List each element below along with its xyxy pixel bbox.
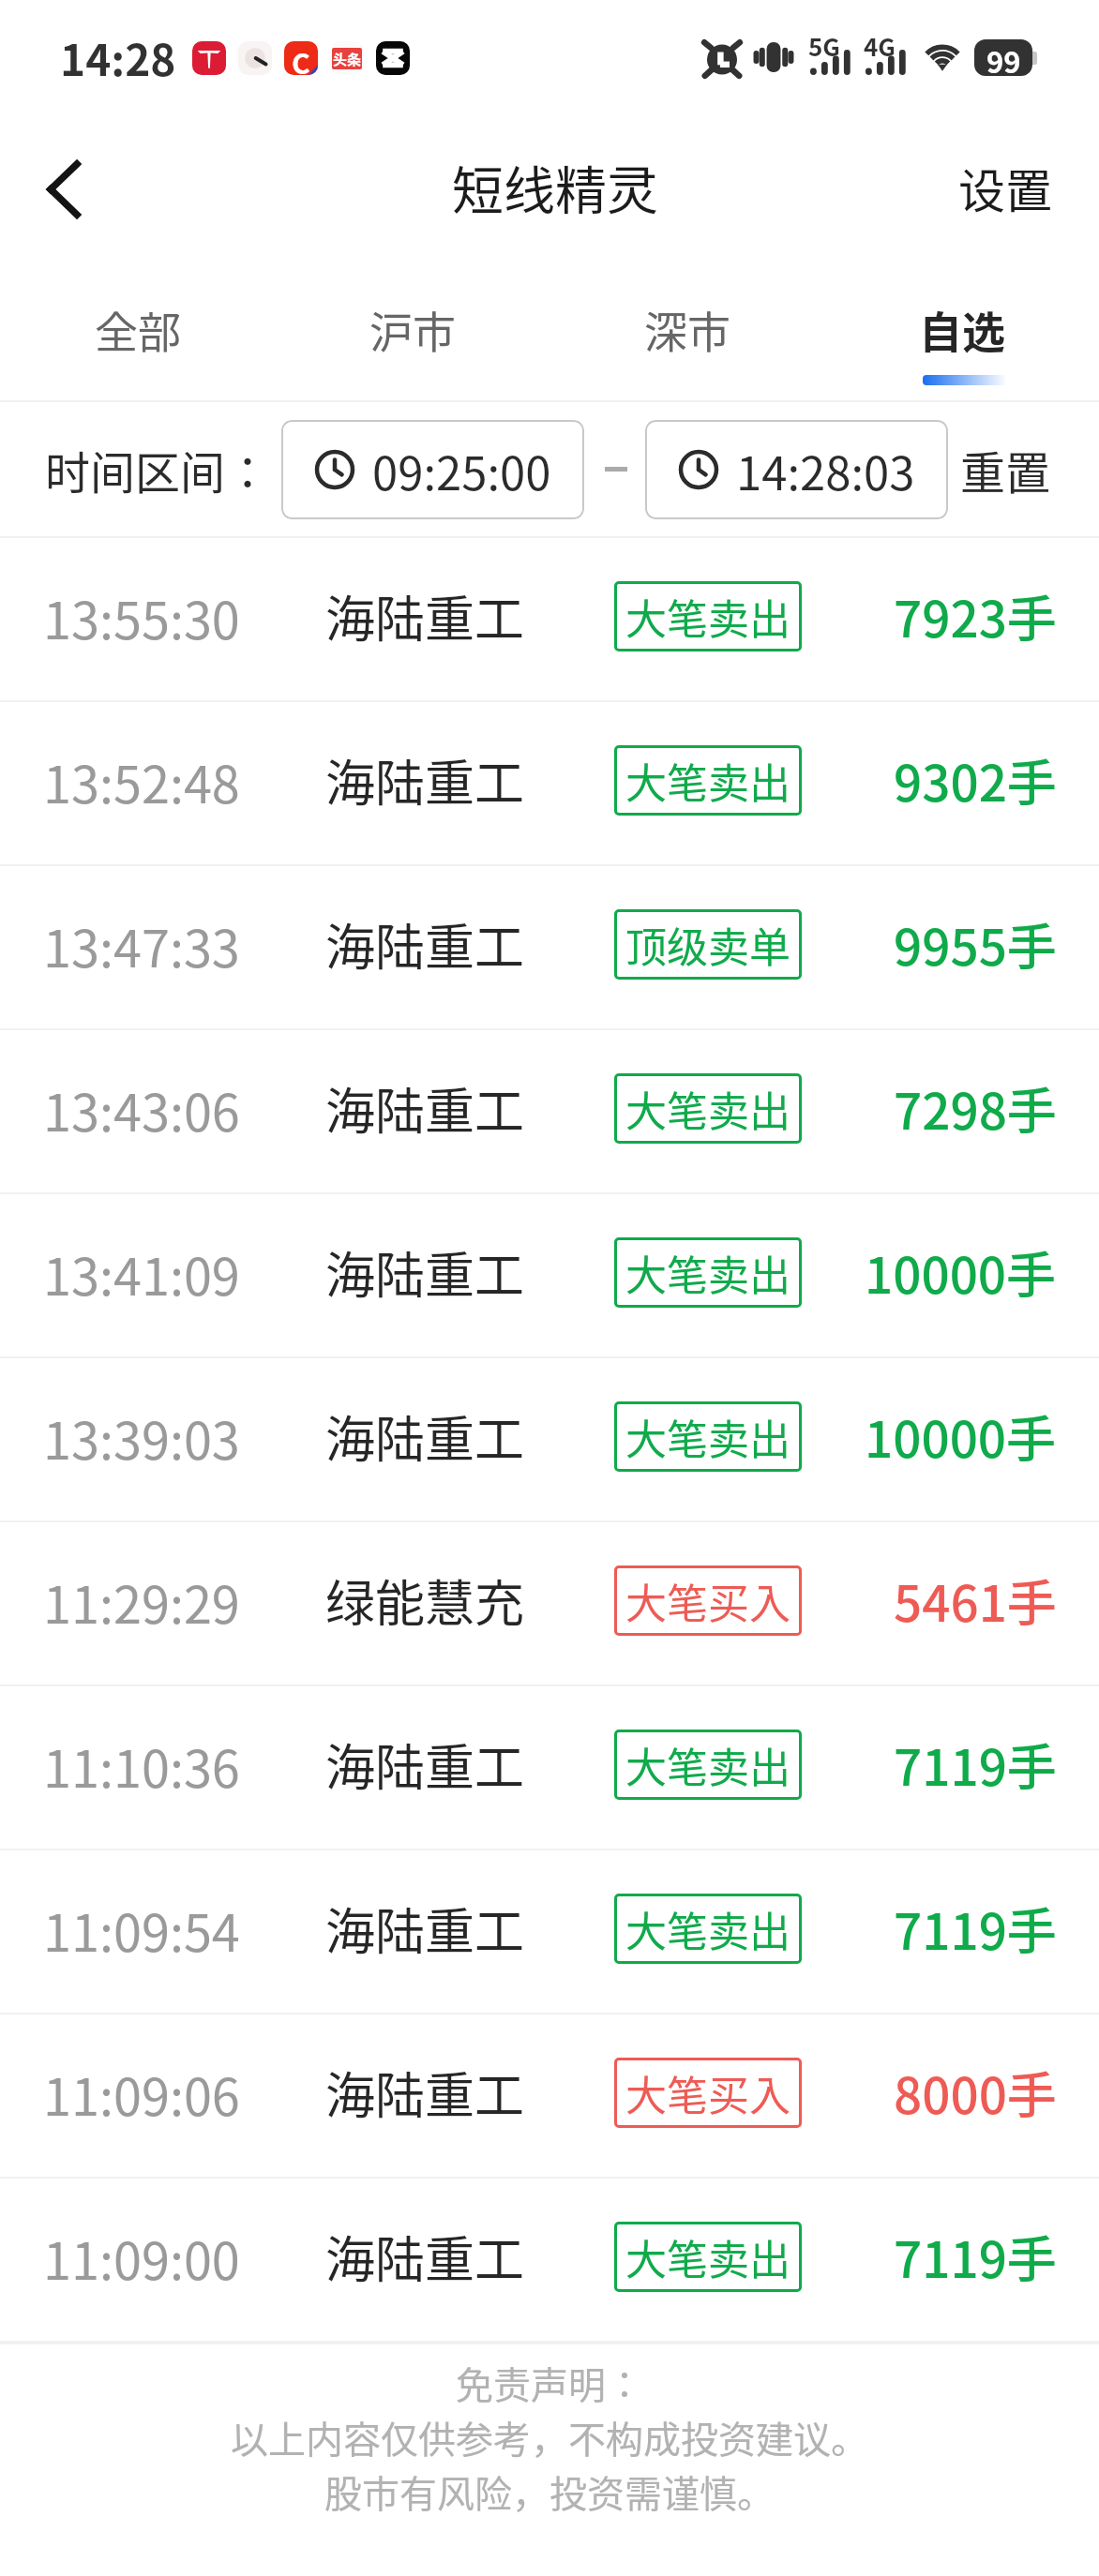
staticText: 大笔卖出	[625, 1899, 790, 1959]
staticText: 11:09:54	[43, 1893, 240, 1966]
button[interactable]: 全部	[0, 264, 275, 400]
staticText: 9955手	[894, 908, 1057, 981]
button[interactable]: 11:09:06	[0, 2014, 1099, 2177]
button[interactable]: 11:09:54	[0, 1850, 1099, 2013]
staticText: 海陆重工	[325, 580, 524, 652]
button[interactable]: 14:28:03	[645, 420, 948, 519]
staticText: 短线精灵	[452, 149, 659, 224]
staticText: 大笔卖出	[625, 1079, 790, 1139]
staticText: 11:09:00	[43, 2221, 240, 2294]
staticText: 重置	[960, 437, 1051, 502]
staticText: 深市	[644, 298, 730, 361]
staticText: 7119手	[894, 1893, 1057, 1965]
staticText: 13:41:09	[43, 1236, 240, 1310]
staticText: 沪市	[369, 298, 456, 361]
staticText: 11:10:36	[43, 1729, 240, 1802]
staticText: 海陆重工	[325, 1072, 524, 1145]
staticText: 自选	[919, 298, 1005, 361]
button[interactable]: 13:43:06	[0, 1030, 1099, 1192]
staticText: 海陆重工	[325, 908, 524, 981]
button[interactable]: 11:09:00	[0, 2179, 1099, 2341]
staticText: 8000手	[894, 2057, 1057, 2129]
staticText: 13:55:30	[43, 580, 240, 653]
staticText: 大笔卖出	[625, 1407, 790, 1467]
button[interactable]: 设置	[908, 127, 1099, 251]
staticText: 7119手	[894, 2221, 1057, 2293]
staticText: 大笔卖出	[625, 1735, 790, 1795]
button[interactable]: 自选	[824, 264, 1099, 400]
button[interactable]: 11:10:36	[0, 1686, 1099, 1849]
staticText: 海陆重工	[325, 1729, 524, 1801]
button[interactable]: 13:39:03	[0, 1358, 1099, 1520]
staticText: 大笔卖出	[625, 587, 790, 647]
staticText: 头条	[333, 49, 362, 69]
button[interactable]: 13:41:09	[0, 1194, 1099, 1356]
button[interactable]: 09:25:00	[281, 420, 584, 519]
staticText: 时间区间：	[45, 437, 271, 502]
staticText: 13:47:33	[43, 908, 240, 981]
staticText: 99	[986, 39, 1021, 76]
staticText: 海陆重工	[325, 1893, 524, 1965]
button[interactable]: 13:55:30	[0, 538, 1099, 700]
staticText: C	[292, 41, 310, 75]
staticText: 全部	[95, 298, 181, 361]
button[interactable]: 13:47:33	[0, 866, 1099, 1028]
staticText: 大笔卖出	[625, 751, 790, 811]
staticText: 股市有风险，投资需谨慎。	[324, 2464, 775, 2519]
staticText: 11:29:29	[43, 1565, 240, 1638]
staticText: 以上内容仅供参考，不构成投资建议。	[231, 2410, 868, 2464]
staticText: 顶级卖单	[625, 915, 790, 975]
staticText: 5461手	[894, 1565, 1057, 1637]
staticText: 11:09:06	[43, 2057, 240, 2130]
staticText: 5G	[808, 28, 840, 64]
button[interactable]: Back	[0, 124, 126, 255]
staticText: 14:28:03	[736, 437, 915, 503]
staticText: 13:43:06	[43, 1072, 240, 1146]
staticText: 海陆重工	[325, 2221, 524, 2293]
button[interactable]: 11:29:29	[0, 1522, 1099, 1685]
staticText: 9302手	[894, 744, 1057, 816]
staticText: 大笔买入	[625, 2063, 790, 2123]
staticText: 免责声明：	[456, 2356, 643, 2410]
staticText: 13:39:03	[43, 1400, 240, 1474]
staticText: 13:52:48	[43, 744, 240, 817]
staticText: 设置	[958, 154, 1052, 221]
staticText: 7119手	[894, 1729, 1057, 1801]
button[interactable]: 深市	[549, 264, 824, 400]
button[interactable]: 沪市	[275, 264, 549, 400]
staticText: 4G	[864, 28, 896, 64]
staticText: 海陆重工	[325, 1400, 524, 1473]
staticText: 大笔卖出	[625, 1243, 790, 1303]
button[interactable]: 13:52:48	[0, 702, 1099, 864]
staticText: 7298手	[894, 1072, 1057, 1145]
staticText: 海陆重工	[325, 1236, 524, 1309]
staticText: 7923手	[894, 580, 1057, 652]
staticText: 大笔卖出	[625, 2227, 790, 2287]
staticText: 14:28	[60, 26, 176, 89]
staticText: 海陆重工	[325, 2057, 524, 2129]
staticText: 大笔买入	[625, 1571, 790, 1631]
staticText: 海陆重工	[325, 744, 524, 816]
button[interactable]: 重置	[949, 416, 1062, 523]
staticText: 10000手	[865, 1236, 1057, 1309]
staticText: 绿能慧充	[325, 1565, 524, 1637]
staticText: 10000手	[865, 1400, 1057, 1473]
staticText: 09:25:00	[372, 437, 551, 503]
